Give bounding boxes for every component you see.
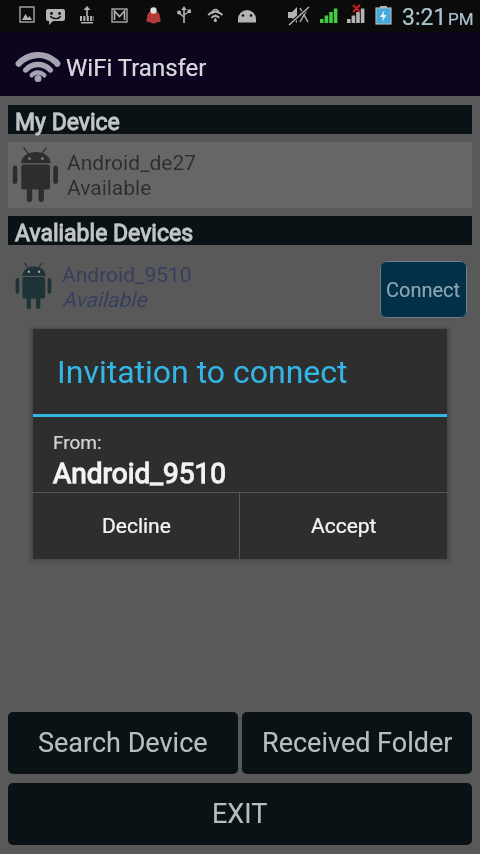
staticText: Avaliable Devices <box>15 220 194 247</box>
staticText: Decline <box>102 514 171 539</box>
staticText: Received Folder <box>262 727 453 759</box>
staticText: Invitation to connect <box>57 353 348 391</box>
staticText: From: <box>53 431 102 453</box>
staticText: PM <box>448 9 474 29</box>
staticText: Connect <box>386 278 461 301</box>
button[interactable]: EXIT <box>8 783 472 845</box>
button[interactable]: Accept <box>240 493 447 559</box>
button[interactable]: Received Folder <box>242 712 472 774</box>
staticText: Android_9510 <box>53 457 226 490</box>
staticText: WiFi Transfer <box>66 54 207 82</box>
staticText: Available <box>62 288 147 313</box>
staticText: Accept <box>311 514 377 539</box>
button[interactable]: Connect <box>380 261 467 318</box>
button[interactable]: Android_de27 <box>8 142 472 208</box>
staticText: My Device <box>15 109 120 136</box>
staticText: Android_9510 <box>62 263 192 288</box>
staticText: Available <box>67 176 152 201</box>
staticText: Search Device <box>38 727 208 759</box>
staticText: Android_de27 <box>67 151 197 176</box>
button[interactable]: Decline <box>33 493 239 559</box>
button[interactable]: Android_9510 <box>8 253 472 319</box>
staticText: 3:21 <box>402 4 447 31</box>
staticText: EXIT <box>212 798 268 830</box>
button[interactable]: Search Device <box>8 712 238 774</box>
